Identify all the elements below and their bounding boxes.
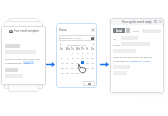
button[interactable]: Minimize [149,20,152,23]
staticText: 21 [66,66,69,69]
button[interactable]: 25 [85,65,90,70]
button[interactable]: 3 [80,50,85,55]
staticText: Your quick email reply [122,20,152,24]
staticText: September 14, 2021. [130,60,152,63]
button[interactable]: 7 [65,55,70,60]
button[interactable]: 29 [70,70,75,75]
button[interactable]: September 14, 2021 [60,35,94,41]
staticText: Thank you for your order. The delivery [113,56,152,59]
staticText: 19 [91,61,94,64]
button[interactable]: Close [91,28,95,32]
staticText: Su [60,47,64,50]
staticText: is registered on [113,60,130,63]
button[interactable] [83,81,95,86]
staticText: 13 [61,61,64,64]
button[interactable]: Maximize [154,20,157,23]
button[interactable] [80,70,85,75]
button[interactable]: 27 [59,70,65,75]
staticText: 7 [67,56,69,59]
button[interactable]: 10 [80,55,85,60]
button[interactable] [85,70,90,75]
button[interactable]: Next step [46,61,55,68]
button[interactable]: 19 [90,60,95,65]
button[interactable]: 15 [70,60,75,65]
staticText: 22 [71,66,74,69]
button[interactable]: 9 [75,55,80,60]
staticText: To: [113,37,117,40]
staticText: Sept 14 [24,61,33,64]
staticText: 6 [61,56,63,59]
staticText: Date [59,27,67,32]
button[interactable]: 22 [70,65,75,70]
staticText: 26 [91,66,94,69]
staticText: Send [116,29,123,33]
staticText: Mo [66,47,70,50]
button[interactable]: Your email template [1,26,46,85]
staticText: 12 [91,56,94,59]
button[interactable]: Next step [100,61,109,68]
button[interactable]: 23 [75,65,80,70]
staticText: Sa [91,47,94,50]
staticText: From [133,29,140,32]
staticText: Your email template [14,29,40,33]
staticText: 5 [92,51,94,54]
button[interactable]: 24 [80,65,85,70]
staticText: 27 [61,71,64,74]
staticText: Th [81,47,85,50]
staticText: 28 [66,71,69,74]
button[interactable]: 13 [59,60,65,65]
button[interactable]: 5 [90,50,95,55]
button[interactable]: 12 [90,55,95,60]
button[interactable]: 28 [65,70,70,75]
staticText: September 2021 [67,43,87,46]
staticText: is expected on [5,61,23,64]
button[interactable]: Previous month [59,43,62,46]
staticText: 1 [72,51,74,54]
button[interactable]: 26 [90,65,95,70]
staticText: 8 [72,56,74,59]
button[interactable]: 11 [85,55,90,60]
button[interactable]: 16 [75,60,80,65]
button[interactable]: 20 [59,65,65,70]
staticText: 30 [76,71,79,74]
button[interactable]: 18 [85,60,90,65]
staticText: 9 [77,56,79,59]
button[interactable]: 4 [85,50,90,55]
staticText: Subject: [113,43,121,46]
staticText: 15 [71,61,74,64]
button[interactable] [80,60,85,65]
button[interactable]: Send [113,28,125,33]
staticText: Thank you for your order. The delivery [5,57,42,60]
staticText: 18 [86,61,89,64]
staticText: Tu [71,47,74,50]
staticText: 16 [76,61,79,64]
staticText: 4 [87,51,89,54]
staticText: 29 [71,71,74,74]
staticText: 23 [76,66,79,69]
button[interactable]: 2 [75,50,80,55]
staticText: Fr [86,47,89,50]
button[interactable]: 30 [75,70,80,75]
staticText: We [76,47,80,50]
button[interactable]: Next month [92,43,95,46]
button[interactable]: 1 [70,50,75,55]
staticText: 20 [61,66,64,69]
button[interactable]: 14 [65,60,70,65]
button[interactable]: 21 [65,65,70,70]
button[interactable]: 8 [70,55,75,60]
staticText: 2 [77,51,79,54]
button[interactable]: 6 [59,55,65,60]
staticText: September 14, 2021 [60,37,82,40]
staticText: 10 [81,56,84,59]
staticText: 25 [86,66,89,69]
staticText: 11 [86,56,89,59]
button[interactable]: Close [159,20,162,23]
staticText: 14 [66,61,69,64]
staticText: 24 [81,66,84,69]
staticText: 3 [82,51,84,54]
